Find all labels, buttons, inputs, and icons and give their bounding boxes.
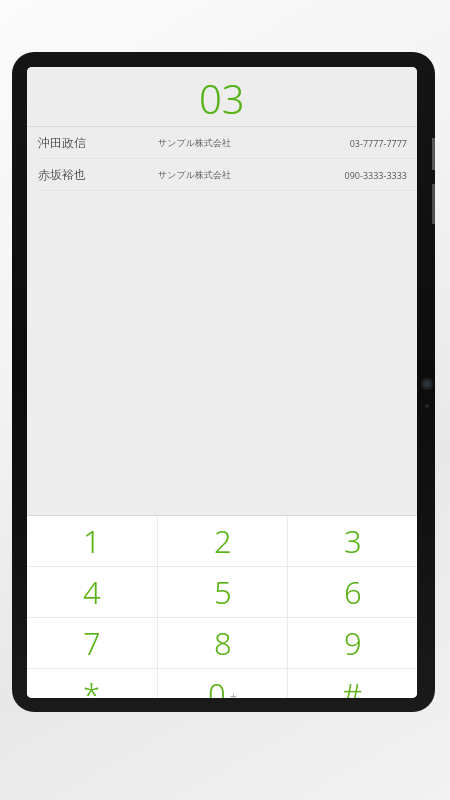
button[interactable]: 赤坂裕也 xyxy=(27,159,417,190)
staticText: 03-7777-7777 xyxy=(349,137,407,149)
staticText: 7 xyxy=(83,622,101,664)
staticText: + xyxy=(230,688,237,698)
staticText: 赤坂裕也 xyxy=(38,167,86,182)
button[interactable]: 5 xyxy=(158,567,287,617)
button[interactable]: 4 xyxy=(27,567,157,617)
staticText: # xyxy=(342,673,363,698)
button[interactable]: 3 xyxy=(288,516,417,566)
staticText: 4 xyxy=(83,571,101,613)
button[interactable]: 6 xyxy=(288,567,417,617)
staticText: 090-3333-3333 xyxy=(344,169,407,181)
button[interactable]: 沖田政信 xyxy=(27,127,417,158)
staticText: 8 xyxy=(214,622,232,664)
button[interactable]: 2 xyxy=(158,516,287,566)
staticText: 沖田政信 xyxy=(38,135,86,150)
staticText: サンプル株式会社 xyxy=(158,169,231,180)
button[interactable]: 1 xyxy=(27,516,157,566)
staticText: 03 xyxy=(199,71,245,125)
staticText: 9 xyxy=(344,622,362,664)
staticText: 2 xyxy=(214,520,232,562)
staticText: サンプル株式会社 xyxy=(158,137,231,148)
staticText: 3 xyxy=(344,520,362,562)
button[interactable]: 9 xyxy=(288,618,417,668)
staticText: 5 xyxy=(214,571,232,613)
staticText: * xyxy=(83,673,101,698)
button[interactable]: * xyxy=(27,669,157,698)
button[interactable]: 0 xyxy=(158,669,287,698)
staticText: 0 xyxy=(208,673,226,698)
staticText: 1 xyxy=(83,520,101,562)
staticText: 6 xyxy=(344,571,362,613)
button[interactable]: 7 xyxy=(27,618,157,668)
button[interactable]: # xyxy=(288,669,417,698)
button[interactable]: 8 xyxy=(158,618,287,668)
